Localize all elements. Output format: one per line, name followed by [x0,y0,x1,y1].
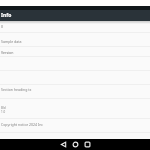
staticText: Sample data [1,39,22,44]
staticText: Version [1,50,14,55]
button[interactable]: Version [0,47,150,57]
button[interactable]: Bld [0,99,150,119]
button[interactable]: Recent apps [82,139,93,150]
staticText: ll [1,24,3,29]
button[interactable]: Info [0,10,150,21]
staticText: 1.0 [1,110,6,114]
button[interactable]: ll [0,21,150,33]
button[interactable]: Section heading tx [0,85,150,99]
staticText: Bld [1,106,6,110]
button[interactable]: Copyright notice 2024 Inc [0,119,150,133]
staticText: Info [1,12,12,19]
staticText: Section heading tx [1,87,32,92]
button[interactable]: Back [58,139,69,150]
button[interactable]: Sample data [0,33,150,47]
button[interactable]: Home [70,139,81,150]
staticText: Copyright notice 2024 Inc [1,122,43,127]
